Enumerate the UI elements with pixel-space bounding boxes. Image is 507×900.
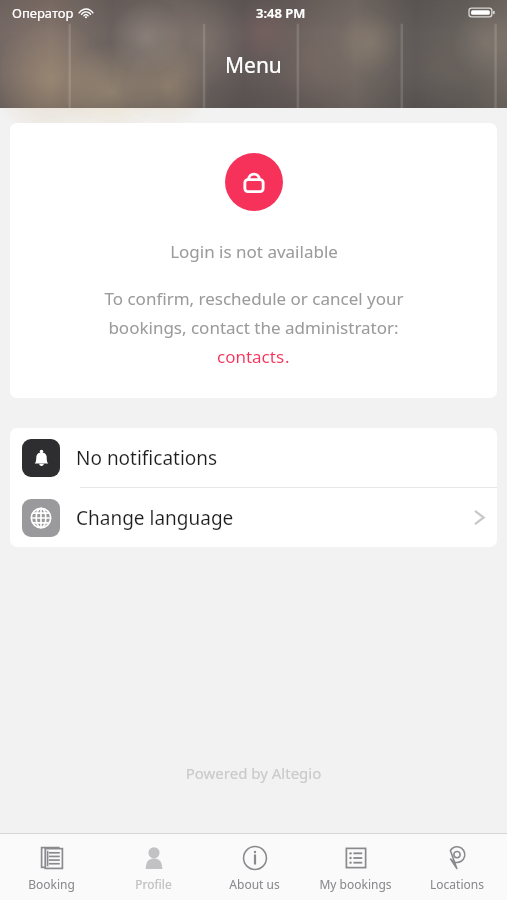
button[interactable]: Booking [0, 834, 102, 900]
staticText: Booking [28, 876, 75, 892]
button[interactable]: About us [204, 834, 305, 900]
button[interactable]: contacts [217, 345, 290, 368]
button[interactable]: Change language [10, 488, 497, 547]
staticText: Login is not available [170, 240, 338, 263]
staticText: About us [229, 876, 280, 892]
staticText: Оператор [12, 4, 74, 22]
button[interactable]: My bookings [305, 834, 406, 900]
staticText: Powered by Altegio [0, 763, 507, 783]
staticText: Locations [430, 876, 484, 892]
button[interactable]: Profile [102, 834, 204, 900]
staticText: Profile [135, 876, 172, 892]
button[interactable]: No notifications [10, 428, 497, 487]
staticText: contacts [217, 345, 285, 368]
button[interactable]: Locations [406, 834, 507, 900]
staticText: 3:48 PM [256, 4, 306, 22]
staticText: Menu [225, 51, 282, 80]
staticText: My bookings [319, 876, 392, 892]
staticText: To confirm, reschedule or cancel your [104, 287, 404, 310]
staticText: No notifications [76, 445, 218, 471]
staticText: . [285, 345, 290, 368]
staticText: bookings, contact the administrator: [108, 316, 399, 339]
staticText: Change language [76, 505, 234, 531]
